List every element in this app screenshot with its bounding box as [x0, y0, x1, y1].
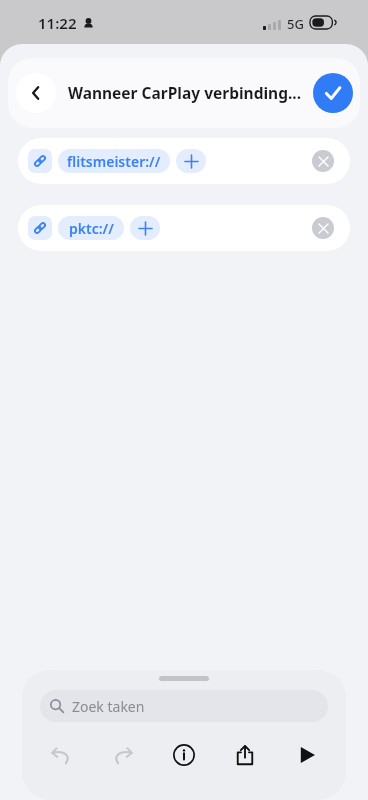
staticText: 11:22: [38, 13, 77, 33]
button[interactable]: Clear: [312, 217, 334, 239]
staticText: 5G: [287, 15, 304, 33]
button[interactable]: Undo: [39, 733, 83, 777]
staticText: pktc://: [69, 219, 114, 238]
button[interactable]: Back: [16, 73, 56, 113]
staticText: Zoek taken: [72, 697, 145, 716]
button[interactable]: Zoek taken: [40, 690, 328, 722]
button[interactable]: Add: [130, 216, 160, 240]
button[interactable]: pktc://: [18, 205, 350, 251]
button[interactable]: Done: [313, 73, 353, 113]
button[interactable]: Info: [162, 733, 206, 777]
staticText: flitsmeister://: [67, 152, 161, 171]
button[interactable]: flitsmeister://: [18, 138, 350, 184]
button[interactable]: Clear: [312, 150, 334, 172]
button[interactable]: Add: [176, 149, 206, 173]
staticText: Wanneer CarPlay verbinding...: [68, 82, 311, 103]
button[interactable]: Redo: [101, 733, 145, 777]
button[interactable]: Run: [285, 733, 329, 777]
button[interactable]: Share: [223, 733, 267, 777]
